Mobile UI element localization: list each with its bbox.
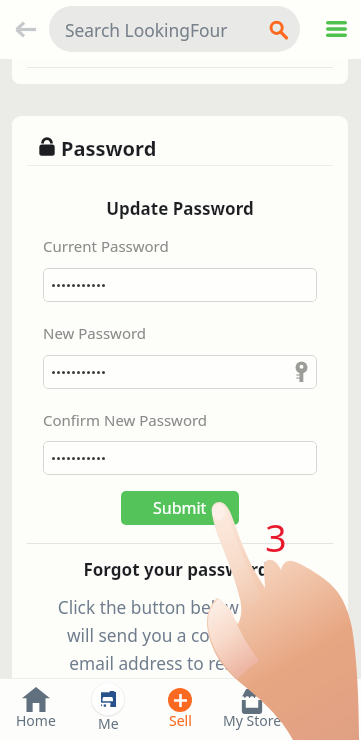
staticText: Click the button below and we will send … [12, 596, 348, 703]
button[interactable] [43, 355, 317, 389]
staticText: Home [16, 711, 56, 730]
button[interactable]: My Store [216, 678, 288, 740]
button[interactable]: Sell [144, 678, 216, 740]
button[interactable]: Home [0, 678, 72, 740]
staticText: Me [98, 714, 119, 733]
staticText: Password [61, 135, 157, 162]
staticText: Search LookingFour [65, 18, 228, 42]
staticText: My Store [223, 711, 282, 730]
staticText: Confirm New Password [43, 410, 208, 430]
button[interactable] [43, 441, 317, 475]
staticText: Update Password [12, 197, 348, 220]
staticText: 3 [265, 511, 287, 563]
button[interactable]: Menu [312, 5, 360, 53]
button[interactable]: Me [72, 678, 144, 740]
staticText: Current Password [43, 236, 169, 256]
button[interactable]: Submit [121, 491, 239, 525]
button[interactable]: Search LookingFour [49, 6, 300, 52]
button[interactable]: Back [2, 6, 48, 52]
staticText: Submit [153, 497, 207, 519]
staticText: Forgot your password? [12, 558, 348, 581]
button[interactable] [43, 268, 317, 302]
staticText: New Password [43, 323, 147, 343]
staticText: Sell [169, 711, 192, 730]
